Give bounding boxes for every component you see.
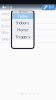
staticText: Home <box>17 27 28 32</box>
staticText: Edit <box>49 6 54 9</box>
button[interactable]: Triggers <box>11 33 34 40</box>
staticText: Bedroom <box>1 25 14 28</box>
staticText: Today <box>18 13 28 19</box>
button[interactable]: Edit <box>42 5 55 10</box>
button[interactable]: Bedroom <box>0 24 56 30</box>
button[interactable]: Garage <box>0 36 56 42</box>
button[interactable]: Home <box>11 26 34 33</box>
staticText: Weekly <box>18 10 27 13</box>
staticText: Living <box>1 12 9 16</box>
staticText: Back <box>7 6 12 9</box>
button[interactable]: Back <box>0 4 12 11</box>
button[interactable]: Office <box>0 30 56 36</box>
staticText: Office <box>1 31 9 35</box>
staticText: Garage <box>1 37 10 41</box>
staticText: Triggers <box>15 34 30 39</box>
button[interactable]: Kitchen <box>0 17 56 24</box>
button[interactable]: Indoors <box>11 19 34 26</box>
staticText: Kitchen <box>1 18 12 22</box>
button[interactable]: Today <box>11 13 34 19</box>
button[interactable]: Living <box>0 11 56 17</box>
staticText: Indoors <box>16 20 29 25</box>
